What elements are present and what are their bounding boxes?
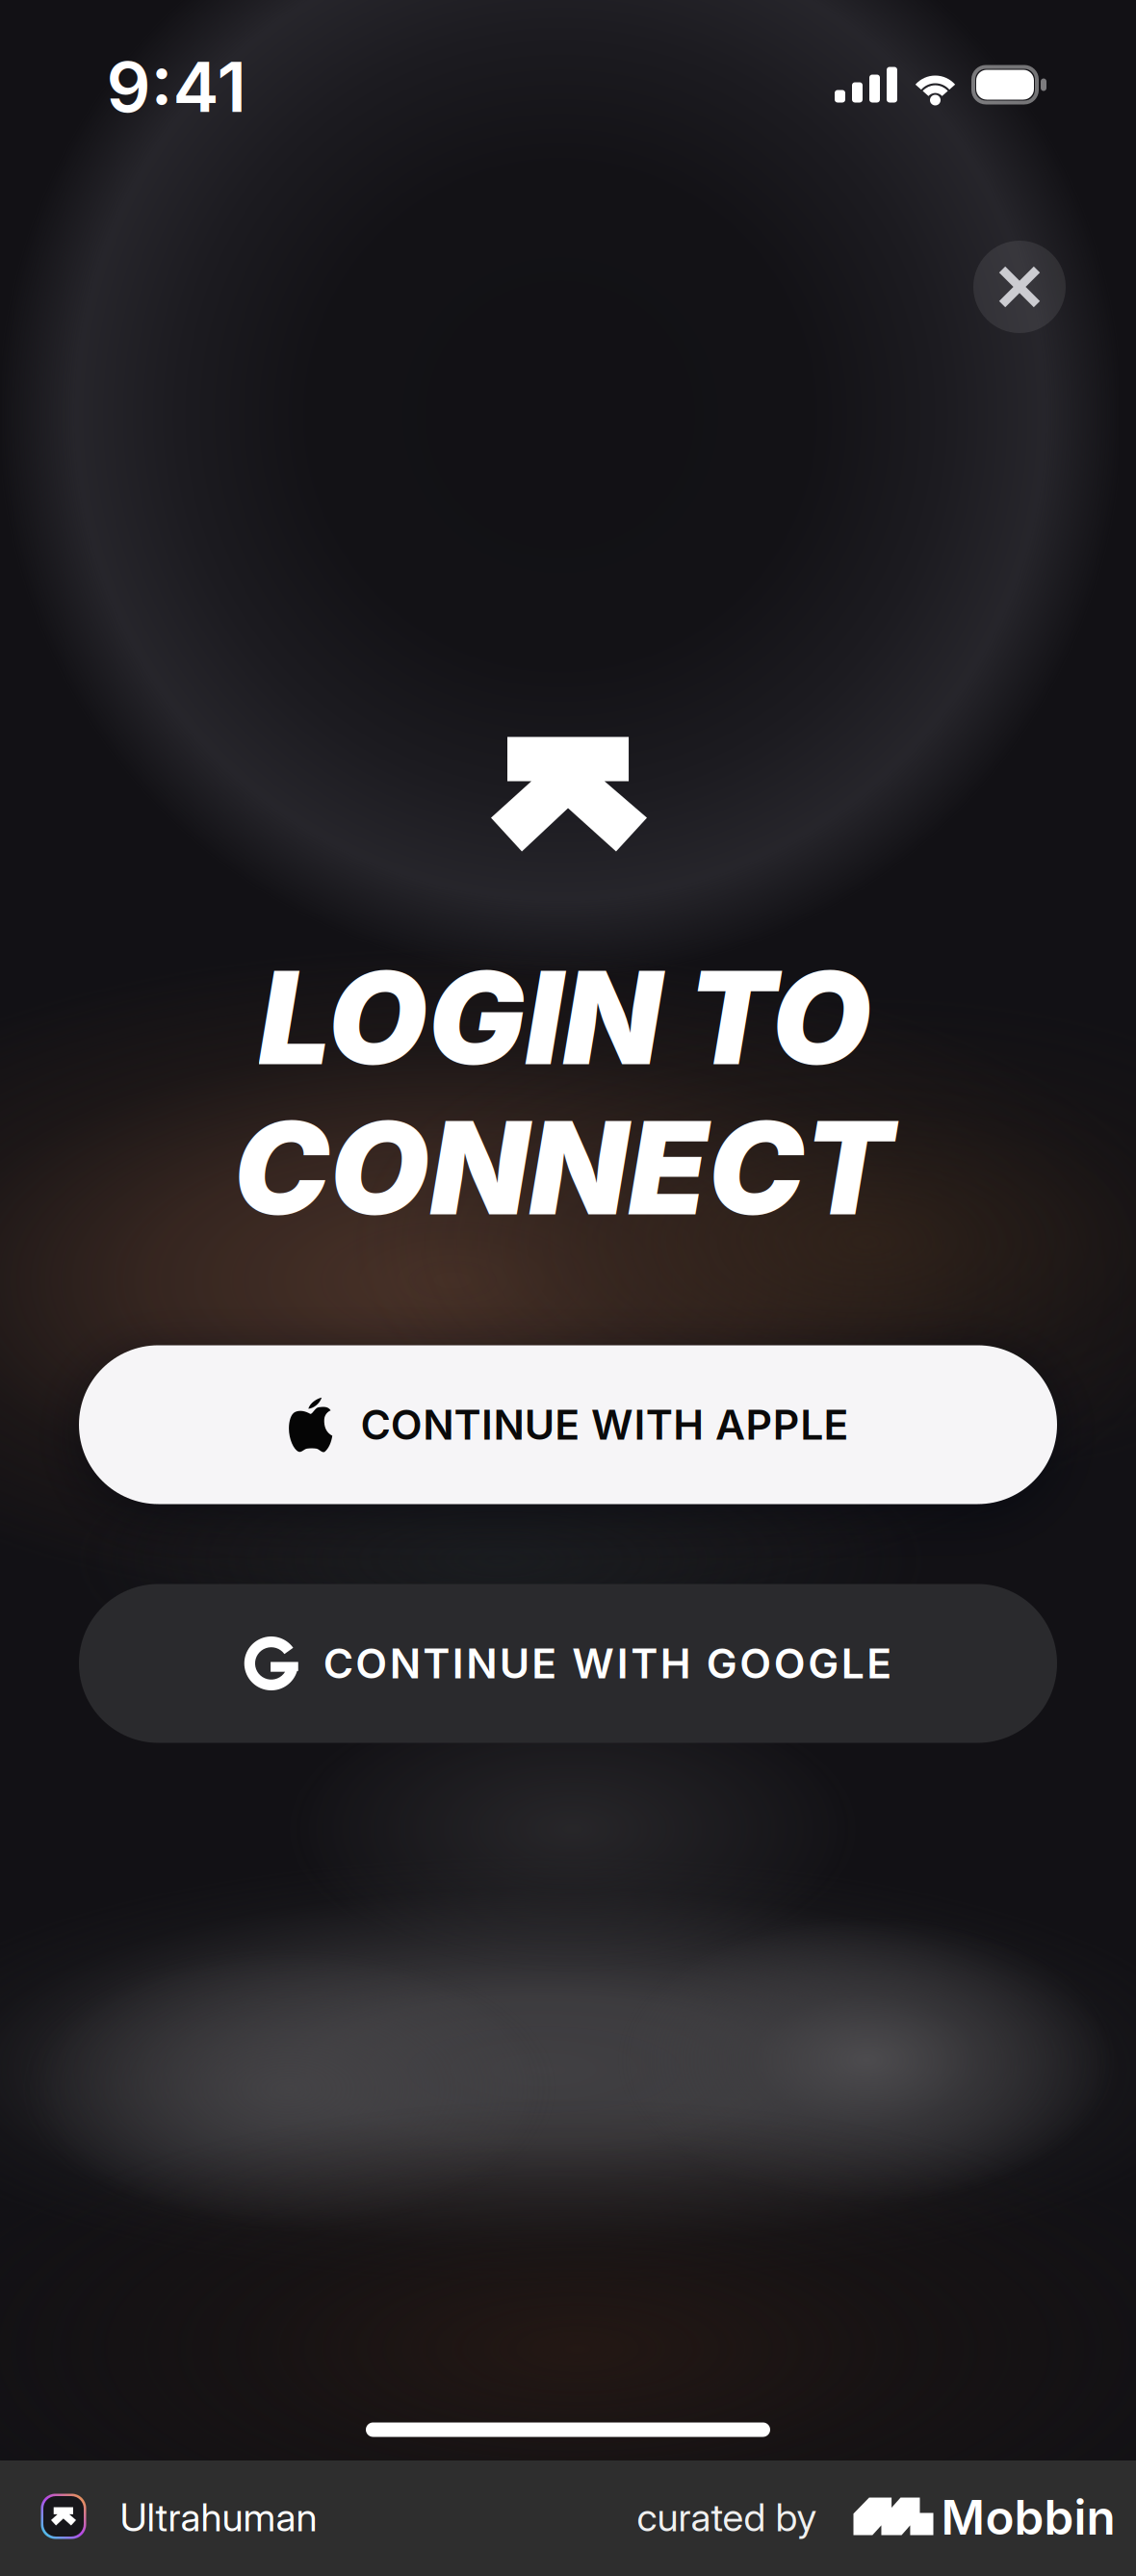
button[interactable]: CONTINUE WITH GOOGLE (79, 1584, 1057, 1743)
button[interactable]: Close (973, 241, 1066, 333)
staticText: CONTINUE WITH APPLE (360, 1400, 849, 1450)
staticText: LOGIN TO (258, 940, 872, 1095)
staticText: Ultrahuman (120, 2494, 317, 2541)
staticText: CONTINUE WITH GOOGLE (323, 1639, 892, 1688)
button[interactable]: CONTINUE WITH APPLE (79, 1345, 1057, 1504)
staticText: Mobbin (941, 2489, 1115, 2546)
staticText: curated by (637, 2494, 817, 2541)
staticText: 9:41 (106, 45, 246, 129)
staticText: CONNECT (233, 1090, 893, 1245)
